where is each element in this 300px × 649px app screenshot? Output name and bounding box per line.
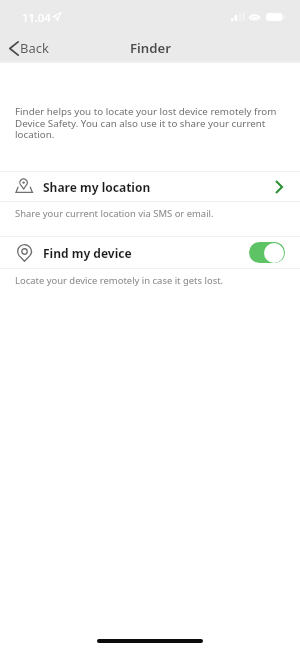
staticText: Share my location <box>43 179 151 195</box>
staticText: Share your current location via SMS or e… <box>15 207 214 220</box>
staticText: 11.04 <box>22 10 51 25</box>
button[interactable]: Find my device <box>0 237 300 268</box>
staticText: Back <box>20 39 49 57</box>
button[interactable]: Find my device toggle <box>249 242 285 263</box>
staticText: Finder <box>130 39 171 57</box>
staticText: Locate your device remotely in case it g… <box>15 274 224 287</box>
button[interactable]: Back <box>5 36 59 60</box>
button[interactable]: Share my location <box>0 172 300 201</box>
staticText: Finder helps you to locate your lost dev… <box>15 105 281 141</box>
staticText: Find my device <box>43 245 132 261</box>
